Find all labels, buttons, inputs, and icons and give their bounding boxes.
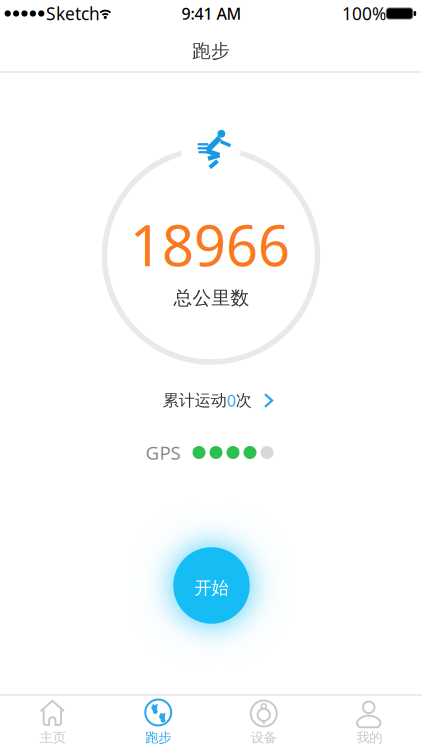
staticText: 开始 <box>194 577 228 599</box>
staticText: 总公里数 <box>173 286 249 309</box>
staticText: 累计运动 <box>163 391 227 410</box>
staticText: 9:41 AM <box>181 3 241 24</box>
staticText: 跑步 <box>192 39 230 62</box>
button[interactable]: 我的 <box>316 695 422 750</box>
staticText: 跑步 <box>145 729 171 746</box>
staticText: 设备 <box>251 729 277 746</box>
button[interactable]: 主页 <box>0 695 105 750</box>
staticText: GPS <box>145 440 180 465</box>
staticText: 我的 <box>356 729 382 746</box>
button[interactable]: 跑步 <box>105 695 211 750</box>
staticText: 18966 <box>130 207 290 282</box>
staticText: 次 <box>236 391 252 410</box>
staticText: 100% <box>342 2 386 25</box>
staticText: 主页 <box>40 729 66 746</box>
button[interactable]: 设备 <box>211 695 316 750</box>
button[interactable]: 累计运动 <box>163 387 273 413</box>
staticText: Sketch <box>46 2 100 25</box>
staticText: 0 <box>227 390 236 411</box>
button[interactable]: 开始 <box>173 547 250 624</box>
